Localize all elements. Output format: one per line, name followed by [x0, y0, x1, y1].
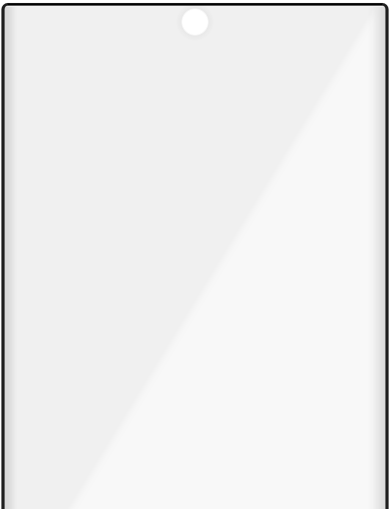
button[interactable]: Phone display [0, 0, 389, 509]
